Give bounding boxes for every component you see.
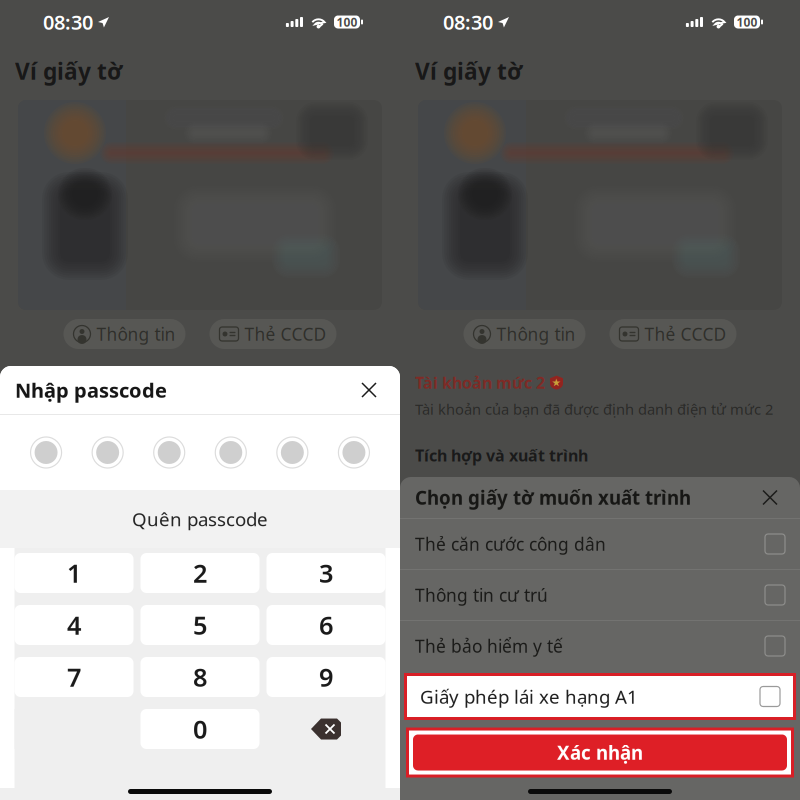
staticText: 5 xyxy=(193,608,207,642)
button[interactable]: 4 xyxy=(14,605,133,645)
staticText: Quên passcode xyxy=(132,507,268,531)
button[interactable]: 0 xyxy=(140,709,259,749)
button[interactable]: Xác nhận xyxy=(400,727,800,778)
staticText: 100 xyxy=(736,14,757,30)
staticText: Thẻ CCCD xyxy=(244,322,326,345)
staticText: Xác nhận xyxy=(557,740,643,765)
staticText: 3 xyxy=(319,556,333,590)
staticText: Tích hợp và xuất trình xyxy=(415,445,588,466)
button[interactable]: Thông tin xyxy=(63,319,185,349)
staticText: 0 xyxy=(193,712,207,746)
staticText: 6 xyxy=(319,608,333,642)
staticText: 4 xyxy=(67,608,81,642)
staticText: Nhập passcode xyxy=(15,377,167,403)
staticText: Thẻ căn cước công dân xyxy=(415,532,606,555)
button[interactable]: 7 xyxy=(14,657,133,697)
button[interactable]: Thông tin cư trú xyxy=(400,570,800,620)
button[interactable]: Thẻ CCCD xyxy=(209,319,336,349)
staticText: Thông tin xyxy=(496,322,575,345)
staticText: 2 xyxy=(193,556,207,590)
button[interactable]: Xoá xyxy=(266,709,385,749)
button[interactable]: 8 xyxy=(140,657,259,697)
staticText: Tài khoản mức 2 xyxy=(415,372,545,393)
staticText: Thông tin xyxy=(96,322,175,345)
button[interactable]: Thẻ CCCD xyxy=(609,319,736,349)
staticText: Ví giấy tờ xyxy=(15,56,122,86)
button[interactable]: Đóng xyxy=(353,374,385,406)
button[interactable]: Thẻ bảo hiểm y tế xyxy=(400,621,800,671)
staticText: ★ xyxy=(551,377,561,389)
staticText: 08:30 xyxy=(443,9,493,35)
button[interactable]: Giấy phép lái xe hạng A1 xyxy=(400,671,800,722)
staticText: Thẻ bảo hiểm y tế xyxy=(415,634,563,657)
staticText: Giấy phép lái xe hạng A1 xyxy=(420,684,638,709)
staticText: Thẻ CCCD xyxy=(644,322,726,345)
button[interactable]: Đóng xyxy=(755,482,785,512)
staticText: Tài khoản của bạn đã được định danh điện… xyxy=(415,399,773,419)
button[interactable]: Thẻ căn cước công dân xyxy=(400,519,800,569)
staticText: Ví giấy tờ xyxy=(415,56,522,86)
staticText: 9 xyxy=(319,660,333,694)
staticText: 100 xyxy=(336,14,357,30)
button[interactable]: Thông tin xyxy=(463,319,585,349)
button[interactable]: 1 xyxy=(14,553,133,593)
button[interactable]: 9 xyxy=(266,657,385,697)
button[interactable]: 2 xyxy=(140,553,259,593)
button[interactable]: 6 xyxy=(266,605,385,645)
staticText: 7 xyxy=(67,660,81,694)
staticText: Thông tin cư trú xyxy=(415,583,548,606)
button[interactable]: 5 xyxy=(140,605,259,645)
staticText: 8 xyxy=(193,660,207,694)
staticText: 1 xyxy=(67,556,81,590)
staticText: Chọn giấy tờ muốn xuất trình xyxy=(415,485,691,510)
button[interactable]: 3 xyxy=(266,553,385,593)
staticText: 08:30 xyxy=(43,9,93,35)
